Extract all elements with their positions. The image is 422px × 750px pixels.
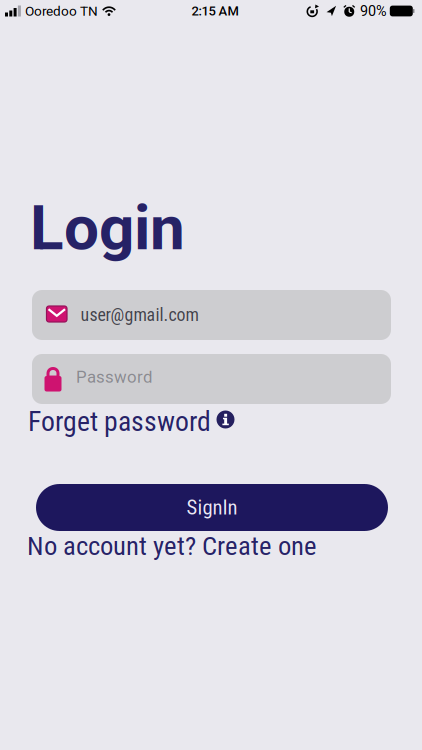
- button[interactable]: Forget password: [28, 405, 234, 438]
- staticText: 2:15 AM: [191, 3, 238, 19]
- staticText: Password: [76, 367, 152, 387]
- button[interactable]: No account yet? Create one: [27, 531, 317, 565]
- button[interactable]: user@gmail.com: [32, 290, 391, 340]
- staticText: Forget password: [28, 405, 211, 438]
- staticText: user@gmail.com: [80, 304, 198, 325]
- button[interactable]: SignIn: [36, 484, 388, 531]
- staticText: No account yet? Create one: [27, 530, 317, 562]
- staticText: SignIn: [186, 495, 237, 520]
- staticText: Ooredoo TN: [25, 3, 98, 19]
- staticText: 90%: [360, 3, 387, 19]
- staticText: Login: [30, 192, 185, 264]
- button[interactable]: Password: [32, 354, 391, 404]
